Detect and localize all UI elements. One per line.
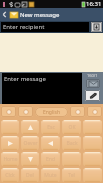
button[interactable]: English	[35, 107, 68, 117]
staticText: OK	[68, 124, 76, 131]
staticText: Oever	[23, 140, 38, 147]
staticText: End	[46, 156, 55, 163]
button[interactable]: Enter message	[4, 75, 82, 104]
button[interactable]: Send message	[86, 79, 100, 88]
staticText: Mute	[44, 172, 57, 179]
button[interactable]: OK	[61, 119, 82, 135]
button[interactable]: key	[40, 135, 61, 151]
button[interactable]: Back	[61, 135, 82, 151]
button[interactable]: key	[20, 119, 40, 135]
button[interactable]: key	[0, 135, 20, 151]
button[interactable]: Home	[0, 151, 20, 167]
button[interactable]: Keyboard	[87, 106, 102, 117]
staticText: Back	[66, 140, 78, 147]
button[interactable]: End	[40, 151, 61, 167]
staticText: 160/1	[87, 73, 98, 78]
button[interactable]: Emoji	[1, 106, 16, 117]
staticText: 16:31	[86, 0, 102, 8]
staticText: Home	[3, 156, 18, 163]
button[interactable]: key	[82, 151, 103, 167]
button[interactable]: Settings	[18, 106, 33, 117]
staticText: Esc	[47, 124, 55, 131]
button[interactable]: Tel	[61, 167, 82, 183]
button[interactable]: Clck	[0, 167, 20, 183]
button[interactable]: key	[0, 119, 20, 135]
staticText: Enter recipient	[3, 23, 45, 31]
button[interactable]: Del	[20, 167, 40, 183]
button[interactable]: key	[20, 151, 40, 167]
button[interactable]: Attach	[85, 90, 100, 101]
button[interactable]: key	[82, 167, 103, 183]
staticText: English	[43, 109, 61, 116]
button[interactable]: Mute	[40, 167, 61, 183]
button[interactable]: key	[82, 119, 103, 135]
button[interactable]: key	[61, 151, 82, 167]
button[interactable]: Oever	[20, 135, 40, 151]
button[interactable]: Voice	[70, 106, 85, 117]
staticText: Del	[26, 172, 34, 179]
staticText: Tel	[68, 172, 75, 179]
staticText: Enter message	[4, 75, 46, 83]
button[interactable]: Enter recipient	[3, 22, 89, 32]
button[interactable]: key	[82, 135, 103, 151]
button[interactable]: Esc	[40, 119, 61, 135]
button[interactable]: Back	[0, 8, 9, 21]
staticText: New message	[20, 11, 60, 19]
button[interactable]: Add contacts	[91, 22, 102, 32]
staticText: Clck	[5, 172, 15, 179]
